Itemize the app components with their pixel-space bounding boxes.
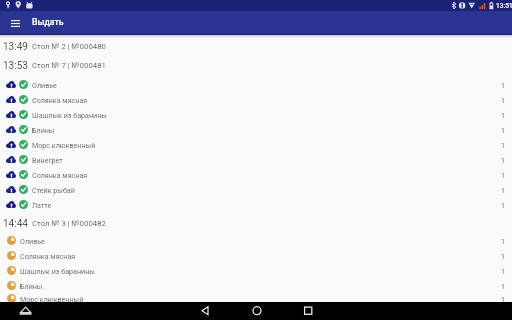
button[interactable]: 13:49 bbox=[0, 37, 512, 56]
staticText: 13:49 bbox=[3, 41, 28, 53]
button[interactable]: Back bbox=[188, 302, 224, 320]
staticText: 1 bbox=[501, 111, 506, 119]
staticText: 1 bbox=[501, 96, 506, 104]
staticText: Морс клюквенный bbox=[20, 295, 84, 302]
button[interactable]: Морс клюквенный bbox=[0, 293, 512, 302]
button[interactable]: Recent apps bbox=[290, 302, 326, 320]
staticText: 1 bbox=[501, 252, 506, 260]
button[interactable]: Шашлык из баранины bbox=[0, 107, 512, 122]
staticText: Стол № 3 | №000482 bbox=[32, 219, 106, 228]
button[interactable]: Морс клюквенный bbox=[0, 137, 512, 152]
staticText: 13:51 bbox=[496, 2, 512, 10]
button[interactable]: Home bbox=[239, 302, 275, 320]
button[interactable]: Солянка мясная bbox=[0, 167, 512, 182]
staticText: Морс клюквенный bbox=[32, 141, 96, 149]
staticText: Солянка мясная bbox=[32, 96, 88, 104]
staticText: 1 bbox=[501, 156, 506, 164]
staticText: 1 bbox=[501, 201, 506, 209]
button[interactable]: Солянка мясная bbox=[0, 248, 512, 263]
staticText: Винегрет bbox=[32, 156, 63, 164]
staticText: Выдать bbox=[32, 17, 64, 27]
staticText: 14:44 bbox=[3, 218, 28, 230]
button[interactable]: Блины bbox=[0, 122, 512, 137]
staticText: Латте bbox=[32, 201, 52, 209]
button[interactable]: Open navigation menu bbox=[0, 11, 30, 35]
staticText: Оливье bbox=[20, 237, 45, 245]
staticText: 1 bbox=[501, 237, 506, 245]
staticText: 13:53 bbox=[3, 60, 28, 72]
button[interactable]: 13:53 bbox=[0, 56, 512, 75]
staticText: 1 bbox=[501, 171, 506, 179]
staticText: 1 bbox=[501, 141, 506, 149]
staticText: 1 bbox=[501, 295, 506, 302]
staticText: 1 bbox=[501, 81, 506, 89]
staticText: Солянка мясная bbox=[32, 171, 88, 179]
button[interactable]: Винегрет bbox=[0, 152, 512, 167]
button[interactable]: Hide keyboard bbox=[8, 302, 44, 320]
staticText: Шашлык из баранины bbox=[32, 111, 107, 119]
staticText: 1 bbox=[501, 267, 506, 275]
staticText: Стол № 2 | №000480 bbox=[32, 42, 106, 51]
staticText: Блины bbox=[32, 126, 55, 134]
staticText: Шашлык из баранины bbox=[20, 267, 95, 275]
button[interactable]: 14:44 bbox=[0, 214, 512, 233]
staticText: Стейк рыбай bbox=[32, 186, 75, 194]
staticText: 1 bbox=[501, 186, 506, 194]
button[interactable]: Блины bbox=[0, 278, 512, 293]
staticText: Солянка мясная bbox=[20, 252, 76, 260]
button[interactable]: Латте bbox=[0, 197, 512, 212]
button[interactable]: Оливье bbox=[0, 233, 512, 248]
button[interactable]: Стейк рыбай bbox=[0, 182, 512, 197]
button[interactable]: Шашлык из баранины bbox=[0, 263, 512, 278]
staticText: 1 bbox=[501, 282, 506, 290]
staticText: 1 bbox=[501, 126, 506, 134]
button[interactable]: Солянка мясная bbox=[0, 92, 512, 107]
staticText: Стол № 7 | №000481 bbox=[32, 61, 106, 70]
staticText: Оливье bbox=[32, 81, 57, 89]
button[interactable]: Оливье bbox=[0, 77, 512, 92]
staticText: Блины bbox=[20, 282, 43, 290]
